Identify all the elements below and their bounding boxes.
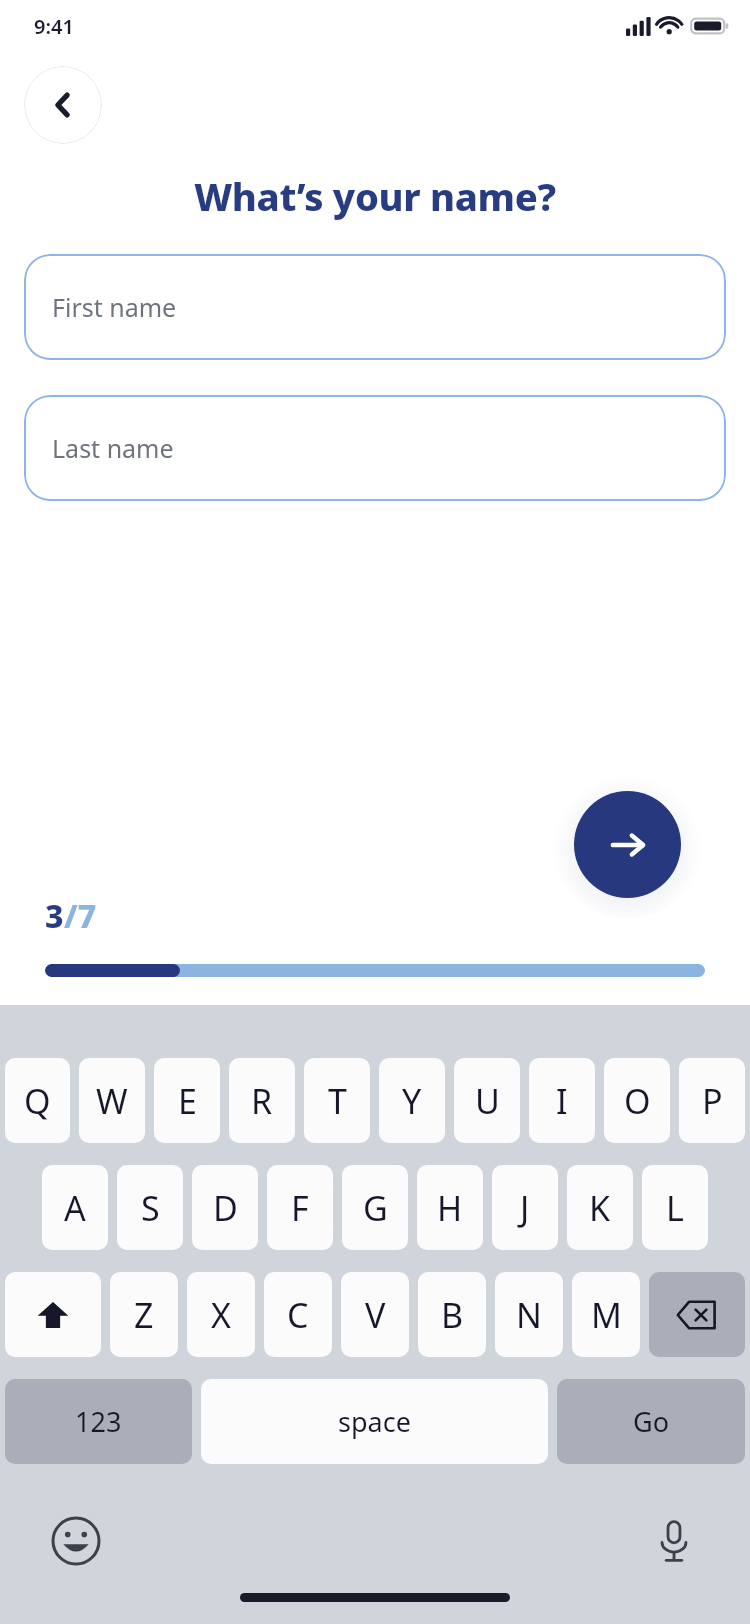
staticText: 3 — [45, 894, 64, 938]
button[interactable]: A — [42, 1165, 108, 1250]
staticText: S — [141, 1185, 160, 1231]
button[interactable]: T — [304, 1058, 370, 1143]
button[interactable]: V — [341, 1272, 409, 1357]
staticText: X — [211, 1292, 231, 1338]
button[interactable]: Last name — [24, 395, 726, 501]
staticText: D — [213, 1185, 238, 1231]
button[interactable]: R — [229, 1058, 295, 1143]
staticText: W — [96, 1078, 128, 1124]
staticText: First name — [52, 290, 177, 324]
staticText: V — [365, 1292, 386, 1338]
staticText: G — [363, 1185, 388, 1231]
button[interactable]: Voice input — [644, 1511, 704, 1571]
button[interactable]: G — [342, 1165, 408, 1250]
staticText: E — [178, 1078, 197, 1124]
button[interactable]: Shift — [5, 1272, 101, 1357]
button[interactable]: First name — [24, 254, 726, 360]
staticText: H — [437, 1185, 463, 1231]
button[interactable]: Go — [557, 1379, 745, 1464]
staticText: O — [624, 1078, 651, 1124]
staticText: Go — [633, 1403, 669, 1440]
staticText: T — [328, 1078, 347, 1124]
button[interactable]: Q — [5, 1058, 70, 1143]
button[interactable]: S — [117, 1165, 183, 1250]
button[interactable]: Emoji — [46, 1511, 106, 1571]
button[interactable]: P — [679, 1058, 745, 1143]
staticText: F — [291, 1185, 309, 1231]
staticText: M — [591, 1292, 622, 1338]
button[interactable]: J — [492, 1165, 558, 1250]
button[interactable]: F — [267, 1165, 333, 1250]
staticText: L — [666, 1185, 684, 1231]
button[interactable]: W — [79, 1058, 145, 1143]
button[interactable]: C — [264, 1272, 332, 1357]
staticText: What’s your name? — [0, 170, 750, 222]
staticText: Last name — [52, 431, 174, 465]
staticText: space — [338, 1403, 411, 1440]
button[interactable]: D — [192, 1165, 258, 1250]
staticText: I — [556, 1078, 568, 1124]
staticText: Z — [134, 1292, 154, 1338]
staticText: U — [475, 1078, 500, 1124]
button[interactable]: space — [201, 1379, 548, 1464]
button[interactable]: 123 — [5, 1379, 192, 1464]
staticText: N — [516, 1292, 542, 1338]
button[interactable]: K — [567, 1165, 633, 1250]
button[interactable]: Back — [24, 66, 102, 144]
button[interactable]: N — [495, 1272, 563, 1357]
staticText: R — [251, 1078, 273, 1124]
staticText: Q — [24, 1078, 51, 1124]
button[interactable]: I — [529, 1058, 595, 1143]
button[interactable]: Y — [379, 1058, 445, 1143]
staticText: C — [287, 1292, 309, 1338]
staticText: /7 — [64, 894, 97, 938]
staticText: B — [441, 1292, 464, 1338]
button[interactable]: B — [418, 1272, 486, 1357]
button[interactable]: O — [604, 1058, 670, 1143]
staticText: 9:41 — [34, 13, 74, 40]
button[interactable]: L — [642, 1165, 708, 1250]
button[interactable]: Backspace — [649, 1272, 745, 1357]
button[interactable]: E — [154, 1058, 220, 1143]
staticText: K — [589, 1185, 611, 1231]
button[interactable]: X — [187, 1272, 255, 1357]
button[interactable]: Continue — [574, 791, 681, 898]
button[interactable]: H — [417, 1165, 483, 1250]
staticText: J — [520, 1185, 530, 1231]
staticText: 123 — [75, 1403, 122, 1440]
button[interactable]: Z — [110, 1272, 178, 1357]
button[interactable]: U — [454, 1058, 520, 1143]
button[interactable]: M — [572, 1272, 640, 1357]
staticText: Y — [402, 1078, 422, 1124]
staticText: A — [64, 1185, 86, 1231]
staticText: P — [702, 1078, 723, 1124]
